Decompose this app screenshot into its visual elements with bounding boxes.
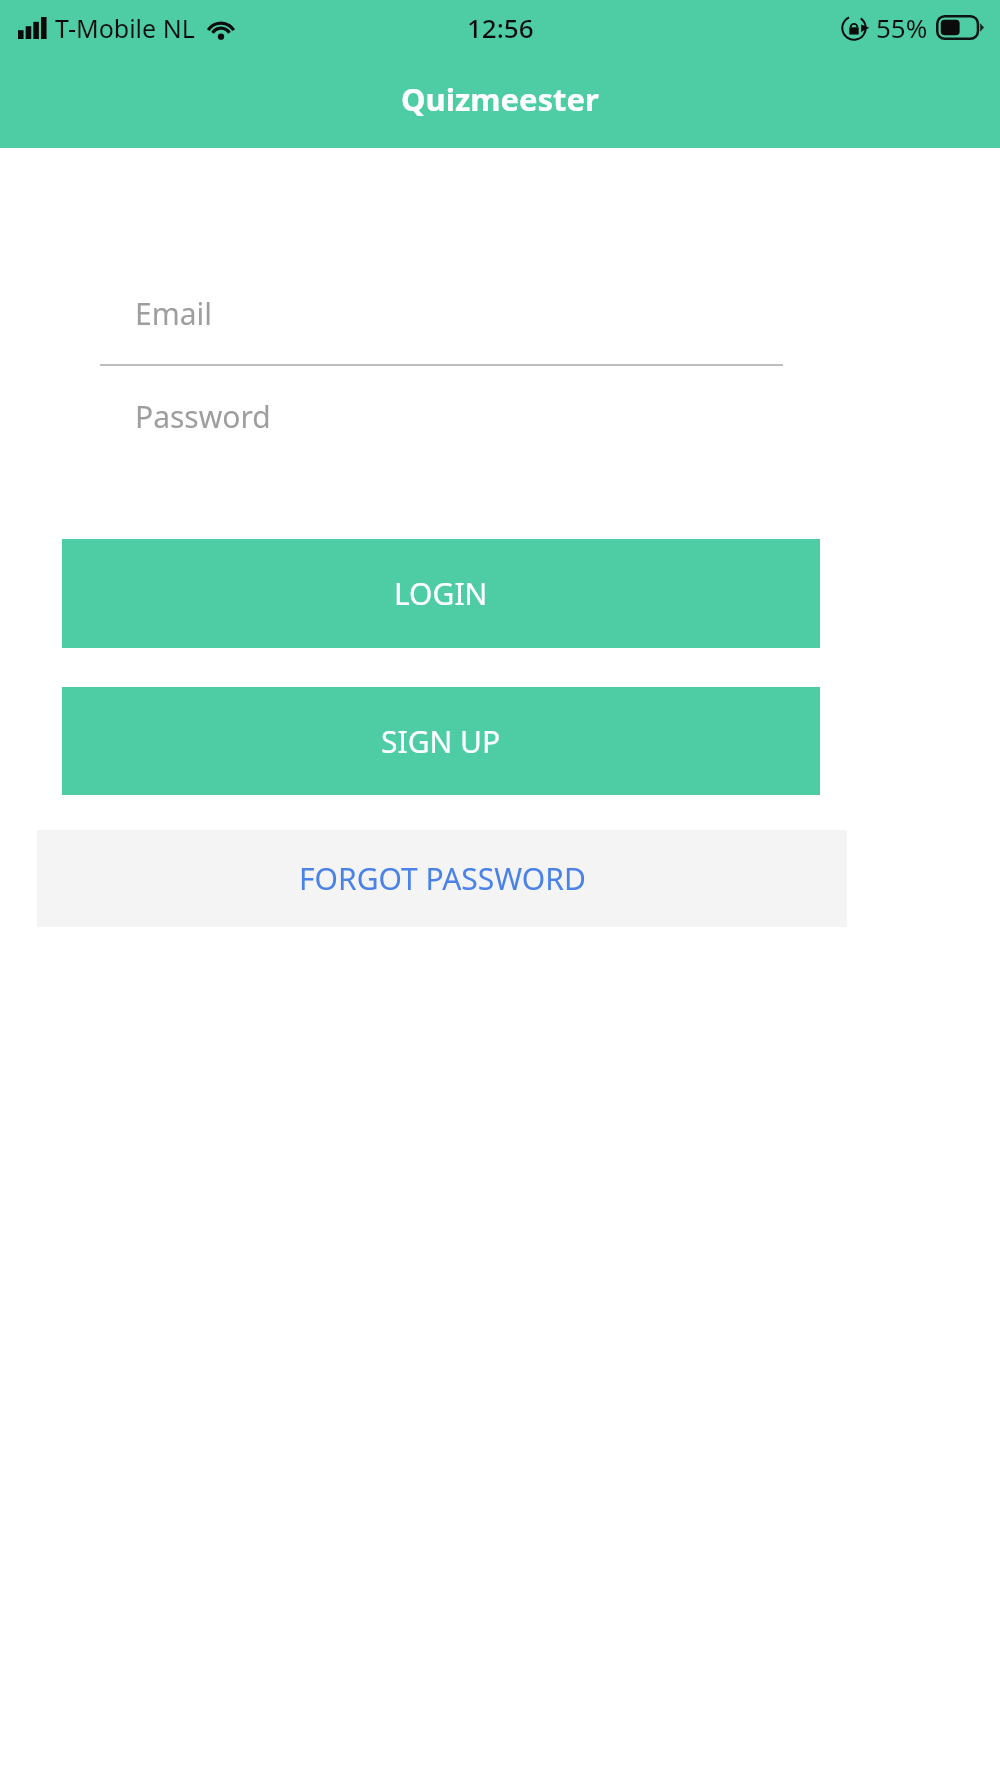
staticText: LOGIN — [394, 573, 488, 614]
staticText: FORGOT PASSWORD — [299, 858, 586, 899]
staticText: Email — [135, 293, 213, 334]
staticText: Password — [135, 396, 271, 437]
staticText: SIGN UP — [381, 721, 501, 762]
button[interactable]: SIGN UP — [62, 687, 820, 795]
staticText: T-Mobile NL — [55, 11, 195, 45]
button[interactable]: Password — [0, 374, 1000, 458]
staticText: 12:56 — [467, 10, 534, 45]
button[interactable]: FORGOT PASSWORD — [37, 830, 847, 927]
staticText: 55% — [876, 10, 928, 45]
button[interactable]: LOGIN — [62, 539, 820, 648]
staticText: Quizmeester — [401, 78, 599, 120]
button[interactable]: Email — [0, 270, 1000, 356]
